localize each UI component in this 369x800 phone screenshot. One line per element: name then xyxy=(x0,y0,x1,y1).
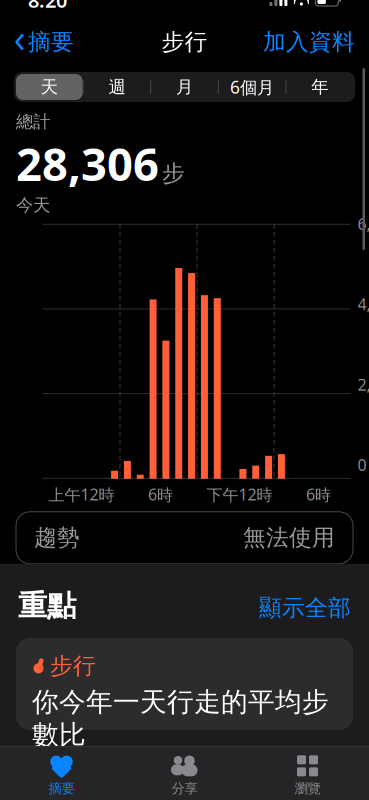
button[interactable]: 顯示全部 xyxy=(251,590,351,626)
button[interactable]: 趨勢 xyxy=(16,512,353,564)
staticText: 瀏覽 xyxy=(294,780,320,797)
button[interactable]: 天 xyxy=(16,74,83,100)
button[interactable]: 年 xyxy=(286,74,353,100)
staticText: 摘要 xyxy=(48,780,74,797)
button[interactable]: 摘要 xyxy=(14,22,80,62)
staticText: 無法使用 xyxy=(243,524,335,552)
staticText: 重點 xyxy=(18,588,76,624)
staticText: 天 xyxy=(41,76,58,98)
staticText: 6時 xyxy=(306,484,331,505)
button[interactable]: 步行 xyxy=(16,638,353,730)
button[interactable]: 6個月 xyxy=(219,74,285,100)
staticText: 今天 xyxy=(16,194,50,216)
staticText: 6,000 xyxy=(357,213,369,234)
button[interactable]: 分享 xyxy=(123,753,246,797)
button[interactable]: 瀏覽 xyxy=(246,753,369,797)
staticText: 28,306 xyxy=(16,133,159,193)
staticText: 2,000 xyxy=(357,374,369,395)
staticText: 年 xyxy=(311,76,328,98)
staticText: 你今年一天行走的平均步數比 xyxy=(32,686,329,751)
staticText: 顯示全部 xyxy=(259,594,351,622)
staticText: 6個月 xyxy=(230,75,274,98)
button[interactable]: 加入資料 xyxy=(257,22,355,62)
staticText: 4,000 xyxy=(357,293,369,315)
staticText: 加入資料 xyxy=(263,28,355,56)
button[interactable]: 週 xyxy=(84,74,150,100)
staticText: 0 xyxy=(357,454,366,475)
staticText: 上午12時 xyxy=(48,484,114,505)
staticText: 下午12時 xyxy=(206,484,272,505)
staticText: 6時 xyxy=(148,484,173,505)
staticText: 趨勢 xyxy=(34,524,80,552)
button[interactable]: 月 xyxy=(151,74,218,100)
staticText: 8:20 xyxy=(28,0,67,13)
staticText: 月 xyxy=(176,76,193,98)
staticText: 週 xyxy=(108,76,125,98)
staticText: 步 xyxy=(162,159,185,187)
staticText: 分享 xyxy=(171,780,197,797)
staticText: 總計 xyxy=(16,111,50,132)
staticText: 摘要 xyxy=(28,28,74,56)
staticText: 步行 xyxy=(50,652,96,680)
button[interactable]: 摘要 xyxy=(0,753,123,797)
staticText: 步行 xyxy=(161,28,207,56)
